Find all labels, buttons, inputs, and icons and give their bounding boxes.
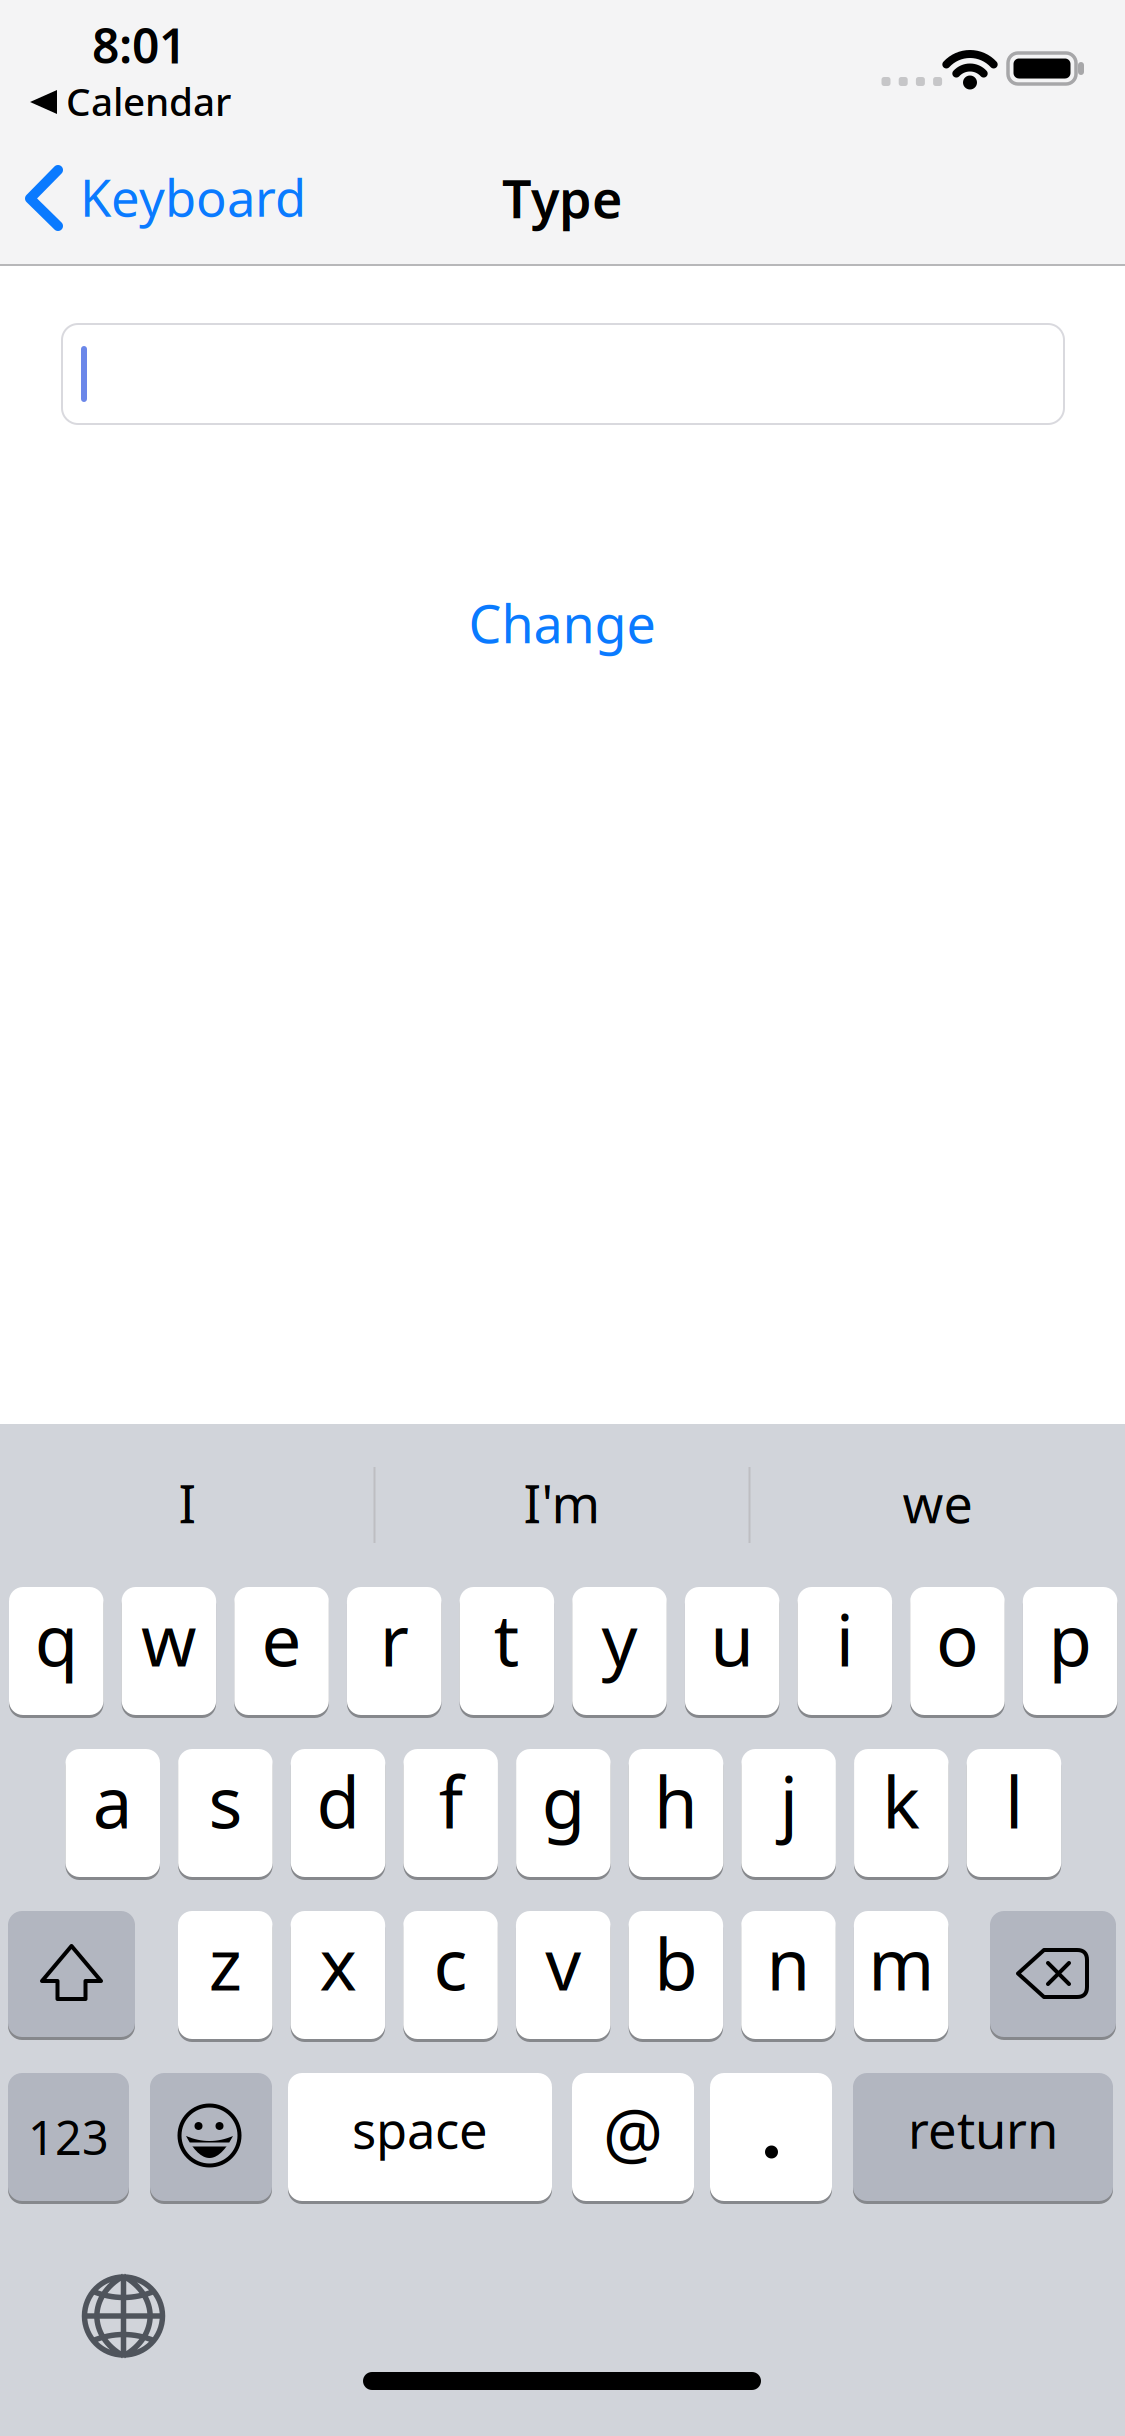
button[interactable]: b [629, 1911, 723, 2039]
staticText: o [936, 1592, 979, 1686]
button[interactable]: s [178, 1749, 273, 1877]
button[interactable]: n [741, 1911, 836, 2039]
staticText: g [542, 1754, 585, 1848]
button[interactable]: x [291, 1911, 385, 2039]
staticText: x [319, 1916, 356, 2010]
button[interactable]: Shift [8, 1911, 135, 2037]
button[interactable]: r [347, 1587, 441, 1715]
staticText: s [208, 1754, 242, 1848]
button[interactable]: a [65, 1749, 160, 1877]
button[interactable]: w [122, 1587, 216, 1715]
button[interactable]: q [9, 1587, 103, 1715]
button[interactable]: i [798, 1587, 892, 1715]
staticText: I [178, 1468, 196, 1538]
button[interactable]: l [967, 1749, 1061, 1877]
staticText: l [1005, 1754, 1023, 1848]
button[interactable]: k [854, 1749, 949, 1877]
button[interactable]: 123 [8, 2073, 129, 2201]
button[interactable]: I [178, 1468, 196, 1538]
staticText: a [93, 1754, 133, 1848]
staticText: return [908, 2095, 1058, 2163]
button[interactable]: Back to Calendar [0, 0, 1125, 2436]
staticText: I'm [523, 1468, 600, 1538]
button[interactable]: I'm [523, 1468, 600, 1538]
button[interactable]: space [288, 2073, 552, 2201]
staticText: v [545, 1916, 581, 2010]
button[interactable]: Change [468, 588, 655, 658]
button[interactable]: m [854, 1911, 948, 2039]
staticText: p [1049, 1592, 1092, 1686]
staticText: q [35, 1592, 78, 1686]
button[interactable]: j [741, 1749, 836, 1877]
staticText: h [654, 1754, 698, 1848]
button[interactable]: v [516, 1911, 610, 2039]
button[interactable]: Delete [990, 1911, 1116, 2037]
button[interactable]: z [178, 1911, 272, 2039]
button[interactable]: t [460, 1587, 554, 1715]
staticText: Change [468, 588, 655, 658]
staticText: w [141, 1592, 197, 1686]
staticText: j [780, 1754, 798, 1848]
staticText: c [434, 1916, 468, 2010]
staticText: Type [502, 163, 622, 233]
button[interactable]: g [516, 1749, 611, 1877]
staticText: z [209, 1916, 242, 2010]
staticText: 8:01 [92, 13, 186, 77]
button[interactable]: c [403, 1911, 498, 2039]
button[interactable]: p [1023, 1587, 1117, 1715]
staticText: Calendar [66, 75, 231, 127]
staticText: u [710, 1592, 754, 1686]
staticText: f [439, 1754, 463, 1848]
staticText: i [836, 1592, 854, 1686]
staticText: n [766, 1916, 810, 2010]
button[interactable]: period [710, 2073, 832, 2201]
button[interactable]: d [291, 1749, 385, 1877]
staticText: Keyboard [80, 163, 306, 231]
staticText: @ [603, 2088, 663, 2176]
staticText: 123 [28, 2106, 109, 2168]
button[interactable]: h [629, 1749, 723, 1877]
staticText: we [902, 1468, 972, 1538]
staticText: space [352, 2095, 488, 2163]
button[interactable]: Back to Keyboard [0, 0, 1125, 2436]
button[interactable]: Text field [62, 324, 1064, 424]
staticText: y [601, 1592, 637, 1686]
button[interactable]: u [685, 1587, 779, 1715]
staticText: m [868, 1916, 934, 2010]
staticText: k [882, 1754, 920, 1848]
staticText: b [654, 1916, 697, 2010]
button[interactable]: we [902, 1468, 972, 1538]
button[interactable]: y [572, 1587, 667, 1715]
staticText: t [494, 1592, 520, 1686]
button[interactable]: e [234, 1587, 329, 1715]
button[interactable]: @ [572, 2073, 694, 2201]
staticText: r [380, 1592, 409, 1686]
button[interactable]: o [910, 1587, 1005, 1715]
button[interactable]: return [853, 2073, 1113, 2201]
staticText: d [317, 1754, 360, 1848]
button[interactable]: f [403, 1749, 498, 1877]
staticText: e [262, 1592, 302, 1686]
button[interactable]: Next keyboard [75, 2268, 171, 2364]
button[interactable]: Emoji [150, 2073, 272, 2201]
